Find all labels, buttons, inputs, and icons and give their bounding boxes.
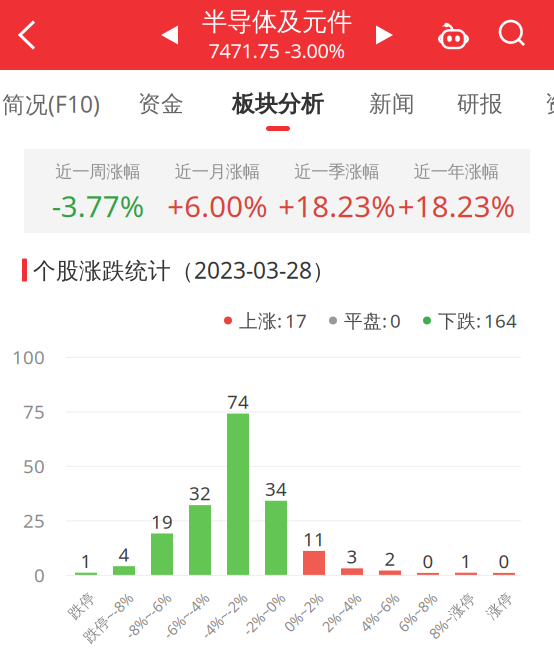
staticText: 8%~涨停 bbox=[408, 588, 466, 608]
button[interactable]: 近一季涨幅 bbox=[277, 161, 396, 225]
staticText: 0%~2% bbox=[266, 588, 314, 608]
staticText: 研报 bbox=[457, 90, 503, 118]
staticText: 跌停 bbox=[56, 589, 86, 607]
staticText: 1 bbox=[80, 548, 91, 573]
button[interactable]: 简况(F10) bbox=[0, 70, 114, 149]
staticText: -2%~0% bbox=[223, 588, 276, 608]
staticText: 4 bbox=[118, 542, 129, 567]
staticText: 6%~8% bbox=[380, 588, 428, 608]
staticText: 1 bbox=[460, 548, 471, 573]
staticText: 0 bbox=[422, 548, 433, 573]
staticText: +18.23% bbox=[278, 186, 395, 225]
staticText: 34 bbox=[265, 476, 287, 501]
staticText: 上涨: 17 bbox=[239, 308, 307, 333]
staticText: 4%~6% bbox=[342, 588, 390, 608]
staticText: 平盘: 0 bbox=[344, 308, 401, 333]
staticText: 资金 bbox=[138, 90, 184, 118]
staticText: -6%~-4% bbox=[142, 588, 200, 608]
button[interactable]: 近一周涨幅 bbox=[38, 161, 157, 225]
staticText: 75 bbox=[23, 399, 45, 424]
staticText: 跌停~-8% bbox=[61, 588, 124, 608]
button[interactable]: 近一月涨幅 bbox=[157, 161, 277, 225]
staticText: 近一季涨幅 bbox=[294, 161, 379, 182]
staticText: 3 bbox=[346, 544, 357, 569]
staticText: 涨停 bbox=[474, 589, 504, 607]
staticText: -4%~-2% bbox=[180, 588, 238, 608]
staticText: 新闻 bbox=[369, 90, 415, 118]
staticText: 个股涨跌统计（2023-03-28） bbox=[33, 255, 335, 285]
staticText: 50 bbox=[23, 453, 45, 478]
staticText: 2%~4% bbox=[304, 588, 352, 608]
staticText: 0 bbox=[498, 548, 509, 573]
button[interactable]: 资讯 bbox=[524, 70, 554, 149]
staticText: 0 bbox=[34, 562, 45, 587]
button[interactable]: 上一个板块 bbox=[145, 0, 194, 70]
button[interactable]: 资金 bbox=[114, 70, 208, 149]
staticText: 100 bbox=[12, 344, 45, 369]
staticText: 25 bbox=[23, 508, 45, 533]
staticText: +6.00% bbox=[167, 186, 267, 225]
button[interactable]: 返回 bbox=[0, 0, 48, 70]
staticText: 2 bbox=[384, 546, 395, 571]
staticText: 下跌: 164 bbox=[438, 308, 517, 333]
staticText: -8%~-6% bbox=[104, 588, 162, 608]
staticText: +18.23% bbox=[398, 186, 515, 225]
staticText: 资讯 bbox=[545, 90, 554, 118]
button[interactable]: 搜索 bbox=[490, 0, 554, 70]
staticText: 19 bbox=[151, 509, 173, 534]
staticText: -3.77% bbox=[52, 186, 144, 225]
staticText: 板块分析 bbox=[232, 90, 324, 118]
button[interactable]: 下一个板块 bbox=[360, 0, 409, 70]
button[interactable]: 新闻 bbox=[348, 70, 436, 149]
staticText: 32 bbox=[189, 481, 211, 505]
staticText: 近一月涨幅 bbox=[175, 161, 260, 182]
button[interactable]: 智能助手 bbox=[428, 0, 490, 70]
button[interactable]: 板块分析 bbox=[208, 70, 348, 149]
button[interactable]: 研报 bbox=[436, 70, 524, 149]
staticText: 74 bbox=[227, 389, 249, 414]
staticText: 近一周涨幅 bbox=[55, 161, 140, 182]
staticText: 半导体及元件 bbox=[202, 6, 352, 37]
staticText: 近一年涨幅 bbox=[414, 161, 499, 182]
button[interactable]: 近一年涨幅 bbox=[396, 161, 516, 225]
staticText: 7471.75 -3.00% bbox=[208, 37, 345, 64]
staticText: 11 bbox=[303, 526, 325, 551]
staticText: 简况(F10) bbox=[2, 89, 100, 119]
